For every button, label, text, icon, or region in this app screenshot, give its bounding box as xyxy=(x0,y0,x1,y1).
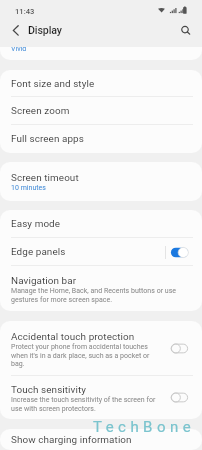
staticText: Show charging information xyxy=(11,434,132,446)
staticText: 10 minutes xyxy=(11,184,111,192)
staticText: Increase the touch sensitivity of the sc… xyxy=(11,396,157,412)
staticText: Touch sensitivity xyxy=(11,384,87,396)
staticText: Edge panels xyxy=(11,246,66,258)
button[interactable]: Screen zoom xyxy=(0,97,202,125)
staticText: Accidental touch protection xyxy=(11,331,135,343)
button[interactable]: Turn off xyxy=(170,247,189,258)
button[interactable]: Turn on xyxy=(170,343,189,354)
button[interactable]: Screen timeout xyxy=(0,162,202,201)
button[interactable]: Accidental touch protection xyxy=(0,321,202,376)
button[interactable]: Search xyxy=(180,22,202,44)
button[interactable]: Vivid xyxy=(0,47,202,60)
staticText: Vivid xyxy=(11,47,27,53)
button[interactable]: Touch sensitivity xyxy=(0,376,202,419)
staticText: Easy mode xyxy=(11,218,61,230)
staticText: Screen zoom xyxy=(11,105,70,117)
button[interactable]: Navigate up xyxy=(0,22,22,44)
staticText: Screen timeout xyxy=(11,172,79,184)
staticText: Manage the Home, Back, and Recents butto… xyxy=(11,287,191,303)
button[interactable]: Full screen apps xyxy=(0,125,202,153)
staticText: Display xyxy=(28,24,62,37)
button[interactable]: Easy mode xyxy=(0,210,202,238)
button[interactable]: Navigation bar xyxy=(0,266,202,311)
button[interactable]: Edge panels xyxy=(0,238,202,266)
staticText: 11:43 xyxy=(15,7,35,16)
staticText: Full screen apps xyxy=(11,133,84,145)
staticText: TechBone xyxy=(93,418,196,436)
staticText: Navigation bar xyxy=(11,275,77,287)
button[interactable]: Turn on xyxy=(170,392,189,403)
button[interactable]: Font size and style xyxy=(0,70,202,97)
button[interactable]: Show charging information xyxy=(0,429,202,450)
staticText: Protect your phone from accidental touch… xyxy=(11,343,157,367)
staticText: Font size and style xyxy=(11,78,95,90)
